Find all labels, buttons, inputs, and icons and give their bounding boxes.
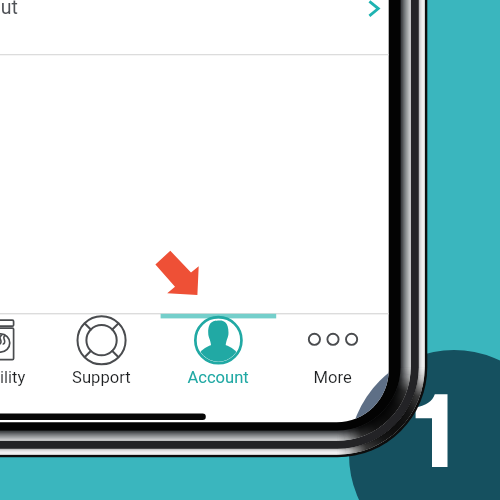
button[interactable]: Log out xyxy=(0,0,389,54)
button[interactable]: More tab xyxy=(275,314,388,422)
button[interactable]: Utility tab xyxy=(0,314,58,422)
button[interactable]: Account tab xyxy=(160,314,275,422)
button[interactable]: Support tab xyxy=(43,314,158,422)
